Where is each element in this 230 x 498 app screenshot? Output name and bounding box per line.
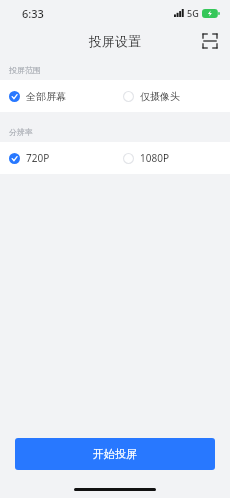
button[interactable]: 开始投屏 (15, 438, 215, 470)
button[interactable]: 720P (0, 142, 115, 174)
staticText: 投屏范围 (9, 65, 41, 75)
button[interactable]: 1080P (115, 142, 230, 174)
staticText: 投屏设置 (89, 33, 141, 49)
staticText: 分辨率 (9, 127, 33, 137)
staticText: 720P (26, 151, 50, 165)
staticText: 1080P (140, 151, 169, 165)
button[interactable]: 全部屏幕 (0, 80, 115, 112)
button[interactable]: Scan (198, 29, 222, 53)
staticText: 开始投屏 (93, 447, 137, 461)
staticText: 仅摄像头 (140, 90, 180, 103)
staticText: 6:33 (22, 6, 44, 21)
staticText: 全部屏幕 (26, 90, 66, 103)
button[interactable]: 仅摄像头 (115, 80, 230, 112)
staticText: 5G (187, 7, 199, 19)
